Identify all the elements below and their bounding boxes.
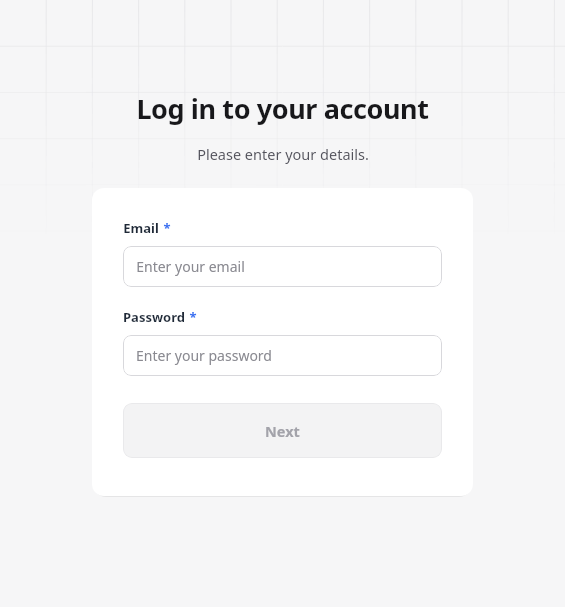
button[interactable]: Enter your password [123,335,442,376]
button[interactable]: Next [123,403,442,458]
staticText: Please enter your details. [197,144,369,164]
staticText: Password [123,308,185,326]
staticText: Enter your password [136,346,272,365]
staticText: Next [265,421,300,441]
button[interactable]: Enter your email [123,246,442,287]
staticText: * [163,219,171,237]
staticText: * [189,308,197,326]
staticText: Email [123,219,159,237]
staticText: Log in to your account [136,90,429,127]
staticText: Enter your email [136,257,245,276]
